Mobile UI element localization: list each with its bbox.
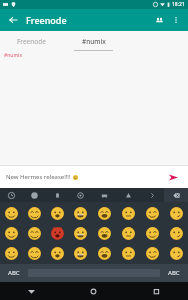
button[interactable]: Emoji 23 xyxy=(164,243,188,263)
button[interactable]: Emoji 18 xyxy=(46,243,69,263)
button[interactable]: Backspace xyxy=(164,188,188,202)
staticText: New Hermes release!!!! xyxy=(6,173,71,181)
button[interactable]: Back xyxy=(0,282,62,300)
button[interactable]: Emoji 15 xyxy=(164,223,188,243)
button[interactable]: Emoji 22 xyxy=(140,243,164,263)
button[interactable]: Emoji 3 xyxy=(69,203,92,223)
staticText: 18:21 xyxy=(172,1,185,8)
button[interactable]: Emoji 10 xyxy=(46,223,69,243)
button[interactable]: More options xyxy=(169,13,183,27)
button[interactable]: Emoji 17 xyxy=(23,243,46,263)
button[interactable]: Emoji 21 xyxy=(116,243,140,263)
button[interactable]: Food xyxy=(69,188,92,202)
button[interactable]: Emoji 13 xyxy=(116,223,140,243)
button[interactable]: Back xyxy=(5,12,21,28)
button[interactable]: Emoji 9 xyxy=(23,223,46,243)
button[interactable]: Members xyxy=(151,12,167,28)
button[interactable]: Emoji 2 xyxy=(46,203,69,223)
button[interactable]: Emoji 8 xyxy=(0,223,23,243)
button[interactable]: Objects xyxy=(140,188,164,202)
button[interactable]: Emoji 19 xyxy=(69,243,92,263)
staticText: #numix xyxy=(82,37,106,46)
button[interactable]: Emoji 14 xyxy=(140,223,164,243)
staticText: ABC xyxy=(168,269,180,277)
button[interactable]: Send xyxy=(164,168,182,186)
button[interactable]: Recent xyxy=(0,188,23,202)
button[interactable]: Smileys xyxy=(23,188,46,202)
staticText: Freenode xyxy=(26,14,151,26)
button[interactable]: ABC xyxy=(160,264,188,282)
button[interactable]: Activities xyxy=(116,188,140,202)
button[interactable]: Recent apps xyxy=(125,282,188,300)
button[interactable]: Emoji 7 xyxy=(164,203,188,223)
button[interactable]: Emoji 16 xyxy=(0,243,23,263)
button[interactable]: Home xyxy=(62,282,125,300)
button[interactable]: Emoji 20 xyxy=(92,243,116,263)
button[interactable]: #numix xyxy=(62,31,125,51)
button[interactable]: Emoji 5 xyxy=(116,203,140,223)
staticText: ABC xyxy=(8,269,20,277)
button[interactable]: Emoji 6 xyxy=(140,203,164,223)
button[interactable]: Freenode xyxy=(0,31,62,51)
button[interactable]: Nature xyxy=(46,188,69,202)
staticText: #numix xyxy=(4,52,23,59)
button[interactable]: ABC xyxy=(0,264,28,282)
button[interactable]: Travel xyxy=(92,188,116,202)
button[interactable]: Emoji 11 xyxy=(69,223,92,243)
staticText: Freenode xyxy=(17,37,46,46)
button[interactable]: Emoji 0 xyxy=(0,203,23,223)
button[interactable]: Emoji 12 xyxy=(92,223,116,243)
button[interactable]: Emoji 1 xyxy=(23,203,46,223)
button[interactable]: Emoji 4 xyxy=(92,203,116,223)
